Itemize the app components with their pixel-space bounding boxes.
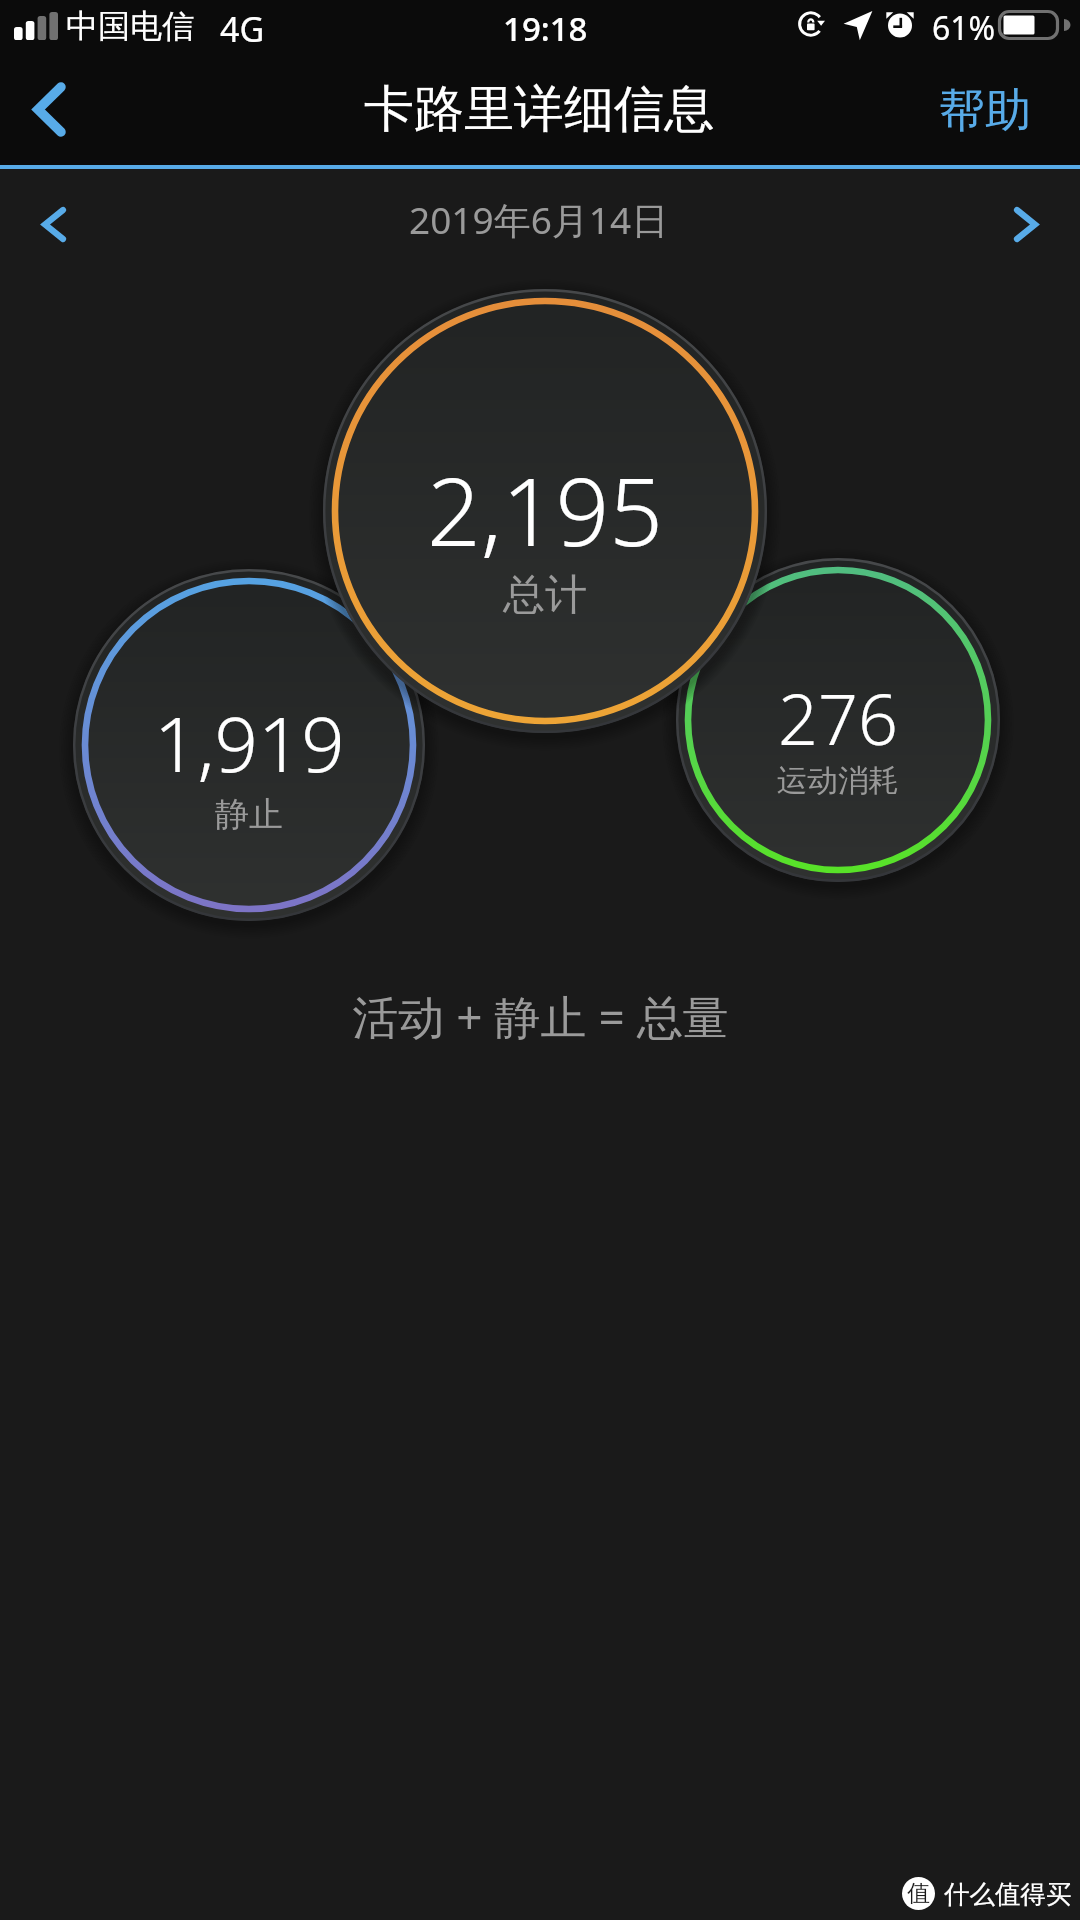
button[interactable]: 静止 1,919: [49, 545, 449, 945]
staticText: 2019年6月14日: [409, 194, 669, 245]
staticText: 什么值得买: [944, 1878, 1072, 1910]
button[interactable]: 帮助: [921, 62, 1049, 160]
staticText: 卡路里详细信息: [364, 78, 714, 141]
staticText: 中国电信: [66, 6, 194, 46]
staticText: 4G: [220, 6, 265, 52]
staticText: 61%: [932, 6, 996, 50]
staticText: 帮助: [939, 82, 1031, 140]
staticText: 19:18: [503, 6, 588, 51]
staticText: 2,195: [427, 446, 663, 574]
staticText: 运动消耗: [777, 762, 899, 800]
staticText: 276: [778, 670, 898, 765]
button[interactable]: 总计 2,195: [299, 265, 791, 757]
button[interactable]: Previous day: [19, 189, 89, 259]
button[interactable]: Next day: [991, 189, 1061, 259]
button[interactable]: 运动消耗 276: [652, 534, 1024, 906]
staticText: 总计: [503, 569, 587, 622]
staticText: 静止: [215, 793, 283, 836]
staticText: 值: [907, 1879, 930, 1908]
staticText: 1,919: [154, 691, 345, 795]
button[interactable]: Back: [0, 60, 98, 158]
staticText: 活动 + 静止 = 总量: [352, 985, 729, 1048]
